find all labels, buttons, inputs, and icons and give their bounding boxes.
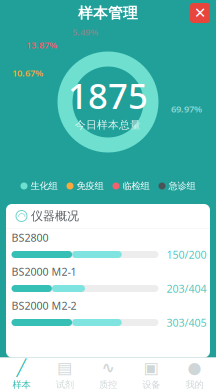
staticText: 13.87% bbox=[26, 39, 57, 51]
staticText: ∿ bbox=[101, 359, 114, 377]
staticText: ● bbox=[187, 359, 201, 377]
staticText: 免疫组 bbox=[76, 180, 103, 192]
staticText: ◠ bbox=[17, 211, 25, 221]
staticText: 69.97% bbox=[171, 103, 202, 115]
button[interactable]: ● bbox=[173, 358, 216, 391]
button[interactable]: ▣ bbox=[130, 358, 173, 391]
staticText: 203/404 bbox=[166, 281, 206, 296]
staticText: BS2000 M2-1 bbox=[11, 264, 76, 279]
staticText: ✕ bbox=[194, 5, 206, 21]
staticText: 10.67% bbox=[12, 67, 43, 79]
staticText: 质控 bbox=[99, 379, 117, 390]
staticText: 试剂 bbox=[56, 379, 74, 390]
staticText: ▣ bbox=[144, 359, 159, 377]
staticText: ╱ bbox=[17, 359, 27, 377]
button[interactable]: ▤ bbox=[43, 358, 86, 391]
staticText: 生化组 bbox=[30, 180, 57, 192]
staticText: 仪器概况 bbox=[31, 209, 79, 223]
button[interactable]: ∿ bbox=[86, 358, 130, 391]
staticText: BS2800 bbox=[11, 230, 48, 245]
staticText: 设备 bbox=[142, 379, 160, 390]
button[interactable]: BS2000 M2-2 bbox=[1, 296, 214, 330]
staticText: 样本管理 bbox=[78, 4, 138, 22]
button[interactable]: ╱ bbox=[0, 358, 43, 391]
staticText: 样本 bbox=[13, 379, 31, 390]
staticText: 1875 bbox=[68, 72, 148, 118]
staticText: ▤ bbox=[57, 359, 72, 377]
staticText: 303/405 bbox=[166, 315, 206, 330]
staticText: 今日样本总量 bbox=[75, 118, 141, 132]
button[interactable]: Close bbox=[190, 3, 210, 23]
staticText: 我的 bbox=[185, 379, 203, 390]
staticText: 5.49% bbox=[72, 26, 98, 38]
staticText: 急诊组 bbox=[168, 180, 195, 192]
staticText: 临检组 bbox=[122, 180, 149, 192]
staticText: BS2000 M2-2 bbox=[11, 298, 76, 313]
button[interactable]: BS2800 bbox=[1, 228, 214, 262]
staticText: 150/200 bbox=[166, 247, 206, 262]
button[interactable]: BS2000 M2-1 bbox=[1, 262, 214, 296]
